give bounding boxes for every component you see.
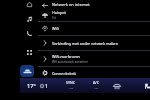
button[interactable]: Media (22, 14, 36, 24)
button[interactable]: Wifi-voorkeuren (38, 51, 150, 67)
button[interactable]: Home (22, 0, 36, 9)
button[interactable]: Fan speed (40, 82, 48, 89)
staticText: Aan (69, 86, 74, 89)
staticText: Wifi-voorkeuren (52, 54, 80, 59)
staticText: Wifi (52, 26, 59, 31)
button[interactable]: Connectiviteit (38, 67, 150, 79)
button[interactable]: Wifi (38, 22, 150, 36)
staticText: 17° (27, 82, 36, 90)
staticText: SYNC (66, 80, 76, 85)
staticText: A/C (93, 80, 99, 85)
button[interactable]: Car settings (20, 65, 34, 77)
button[interactable]: Verbinding met ander netwerk maken (38, 36, 150, 51)
button[interactable]: SYNC (64, 80, 78, 89)
staticText: Verbinding met ander netwerk maken (52, 41, 118, 46)
staticText: Aan (94, 86, 99, 89)
button[interactable]: Apps (22, 47, 36, 57)
staticText: 1 (45, 82, 48, 89)
staticText: Connectiviteit (52, 71, 76, 76)
staticText: Uit (52, 16, 56, 20)
staticText: Wifi automatisch aanzetten (52, 60, 88, 64)
button[interactable]: Phone (22, 28, 36, 38)
button[interactable]: Hotspot (38, 9, 150, 22)
staticText: Hotspot (52, 10, 66, 15)
button[interactable]: A/C (90, 80, 102, 89)
button[interactable]: Seat heater (143, 81, 150, 90)
button[interactable]: Back (38, 1, 52, 9)
button[interactable]: Defrost (112, 81, 122, 90)
button[interactable]: 17° (22, 79, 40, 92)
staticText: Netwerk en internet (52, 2, 90, 7)
